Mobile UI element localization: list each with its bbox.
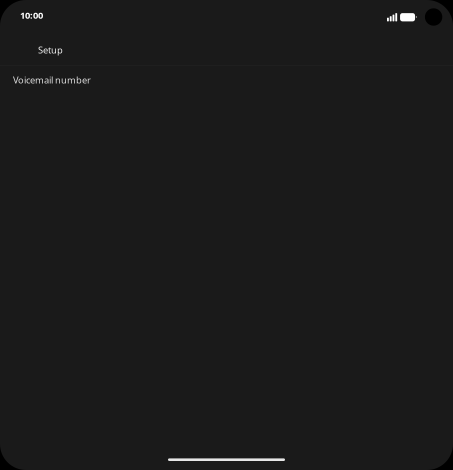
button[interactable]: Setup xyxy=(0,40,453,60)
staticText: 10:00 xyxy=(20,9,43,21)
button[interactable]: Voicemail number xyxy=(0,72,453,88)
staticText: Setup xyxy=(38,44,63,56)
staticText: Voicemail number xyxy=(13,74,91,86)
